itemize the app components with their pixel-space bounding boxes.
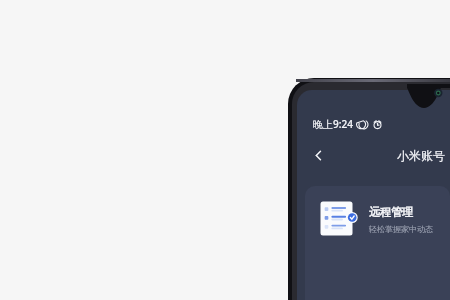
staticText: 远程管理 bbox=[369, 205, 413, 219]
staticText: 晚上9:24 bbox=[313, 117, 353, 131]
staticText: 轻松掌握家中动态 bbox=[369, 224, 433, 234]
staticText: 小米账号 bbox=[397, 148, 445, 163]
button[interactable]: Back bbox=[307, 144, 329, 166]
button[interactable]: 远程管理 bbox=[305, 186, 450, 300]
